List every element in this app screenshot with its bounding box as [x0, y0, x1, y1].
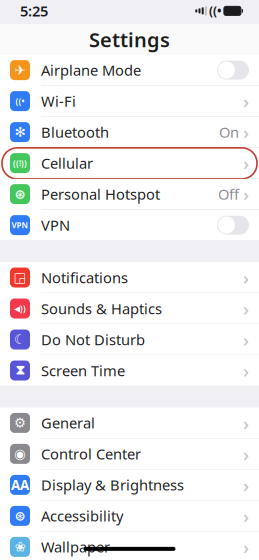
staticText: Airplane Mode [41, 60, 141, 80]
staticText: 5:25 [20, 1, 48, 21]
staticText: VPN [41, 215, 70, 235]
staticText: › [243, 410, 249, 435]
button[interactable]: VPN [0, 210, 259, 240]
button[interactable]: ⧗ [0, 355, 259, 386]
button[interactable]: ⊛ [0, 179, 259, 210]
staticText: › [243, 358, 249, 383]
staticText: Settings [89, 26, 170, 53]
staticText: Screen Time [41, 361, 125, 380]
staticText: › [243, 534, 249, 559]
staticText: General [41, 413, 95, 433]
staticText: Do Not Disturb [41, 330, 145, 349]
staticText: ◉ [14, 446, 26, 461]
button[interactable]: ((⁞)) [0, 148, 259, 179]
staticText: Accessibility [41, 506, 123, 526]
staticText: ((• [209, 3, 222, 19]
button[interactable]: ❀ [0, 532, 259, 560]
staticText: › [243, 182, 249, 206]
staticText: Notifications [41, 268, 128, 287]
staticText: › [243, 265, 249, 290]
staticText: Wi-Fi [41, 91, 76, 111]
staticText: Off [218, 184, 239, 204]
button[interactable]: ((• [0, 86, 259, 117]
staticText: › [243, 89, 249, 113]
staticText: ✻ [14, 124, 25, 140]
staticText: › [243, 120, 249, 144]
button[interactable]: ◲ [0, 262, 259, 293]
staticText: ✈ [14, 62, 25, 78]
staticText: On [219, 122, 239, 142]
staticText: Wallpaper [41, 537, 110, 557]
button[interactable]: AA [0, 470, 259, 501]
button[interactable]: ◀)) [0, 293, 259, 324]
staticText: ❀ [14, 539, 25, 554]
staticText: › [243, 503, 249, 528]
staticText: Sounds & Haptics [41, 299, 162, 318]
button[interactable]: ✻ [0, 117, 259, 148]
staticText: ☾ [14, 332, 26, 347]
staticText: Personal Hotspot [41, 184, 160, 204]
button[interactable]: ⚙ [0, 408, 259, 439]
button[interactable]: ✈ [0, 55, 259, 86]
staticText [222, 6, 224, 16]
staticText: Cellular [41, 153, 93, 173]
staticText: ((⁞)) [13, 158, 27, 168]
staticText: › [243, 327, 249, 352]
staticText: ((• [15, 96, 24, 106]
staticText: AA [11, 476, 29, 494]
staticText: › [243, 296, 249, 321]
staticText: ⊛ [14, 508, 25, 523]
staticText: Bluetooth [41, 122, 109, 142]
staticText: Display & Brightness [41, 475, 184, 495]
button[interactable]: ◉ [0, 439, 259, 470]
staticText: ⊛ [14, 186, 25, 202]
button[interactable]: ☾ [0, 324, 259, 355]
staticText: › [243, 472, 249, 497]
staticText: › [243, 151, 249, 175]
staticText: ◀)) [14, 303, 26, 314]
staticText: › [243, 441, 249, 466]
staticText: Control Center [41, 444, 141, 464]
button[interactable]: ⊛ [0, 501, 259, 532]
staticText: ◲ [13, 270, 26, 285]
staticText: ⧗ [15, 364, 24, 377]
staticText: VPN [11, 220, 28, 230]
staticText: ⚙ [14, 415, 26, 430]
